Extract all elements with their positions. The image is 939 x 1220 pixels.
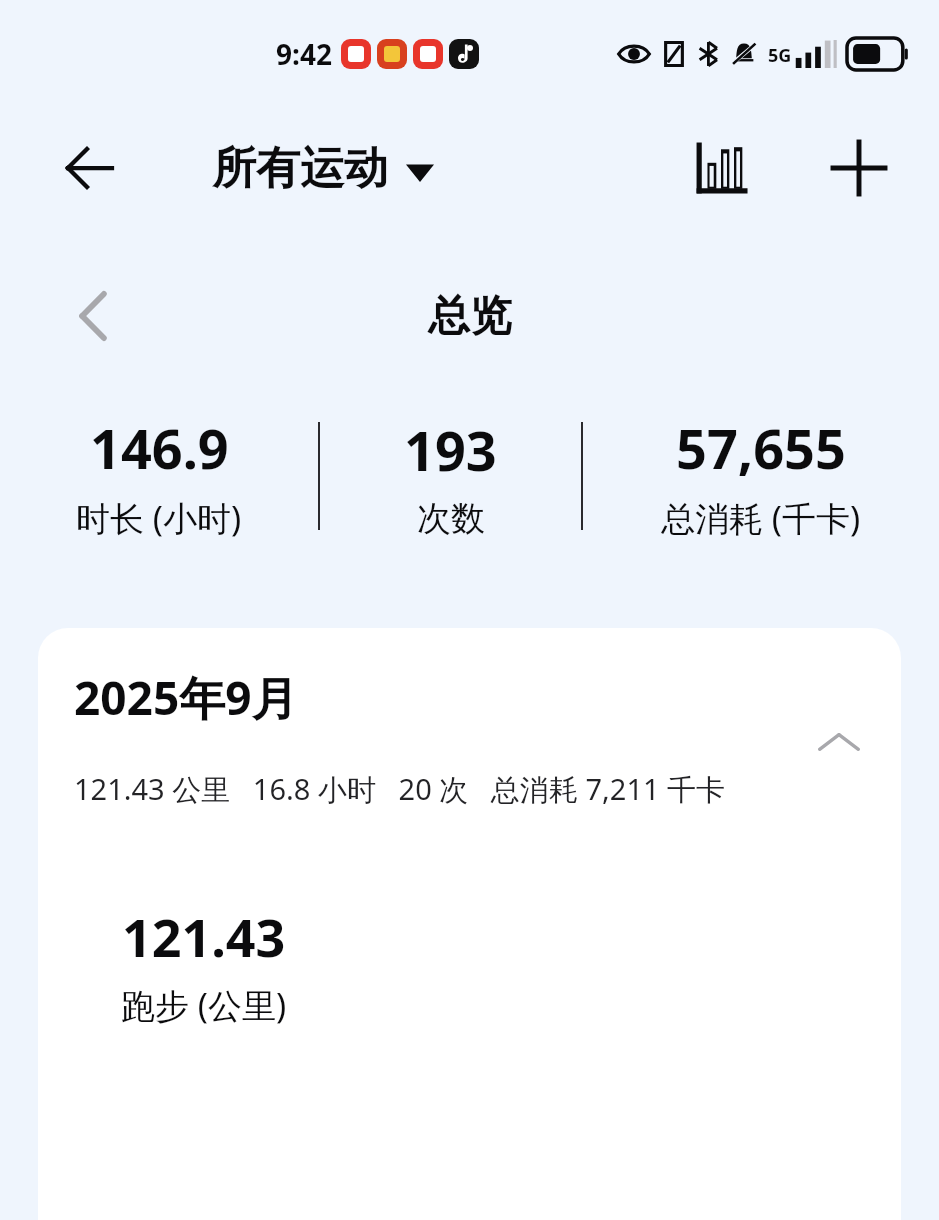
other: Silent mode [731, 41, 757, 67]
staticText: 次数 [417, 497, 485, 540]
other: NFC [663, 41, 685, 67]
staticText: 193 [404, 413, 497, 487]
button[interactable]: 所有运动 [212, 141, 434, 196]
button[interactable]: 193 [320, 413, 581, 540]
staticText: 57,655 [676, 411, 846, 485]
button[interactable]: 57,655 [583, 411, 939, 541]
staticText: 时长 (小时) [76, 495, 242, 541]
staticText: 2025年9月 [74, 666, 298, 729]
staticText: 146.9 [90, 411, 229, 485]
button[interactable]: Statistics [683, 130, 759, 206]
staticText: 9:42 [276, 35, 332, 73]
other: Battery [847, 38, 909, 70]
staticText: 总消耗 (千卡) [661, 495, 861, 541]
button[interactable]: Back [52, 130, 128, 206]
staticText: 总览 [428, 290, 512, 343]
staticText: 121.43 [122, 901, 286, 972]
staticText: 跑步 (公里) [121, 982, 287, 1028]
staticText: 所有运动 [212, 141, 388, 196]
other: Signal [794, 40, 838, 68]
other: Eye comfort [618, 43, 650, 65]
button[interactable]: Previous [58, 281, 128, 351]
button[interactable]: Add [821, 130, 897, 206]
staticText: 5G [768, 43, 792, 68]
staticText: 121.43 公里 16.8 小时 20 次 总消耗 7,211 千卡 [74, 769, 726, 809]
button[interactable]: 146.9 [0, 411, 318, 541]
other: Bluetooth [698, 41, 718, 67]
button[interactable]: 2025年9月 [38, 628, 901, 1220]
button[interactable]: Collapse [807, 710, 871, 774]
